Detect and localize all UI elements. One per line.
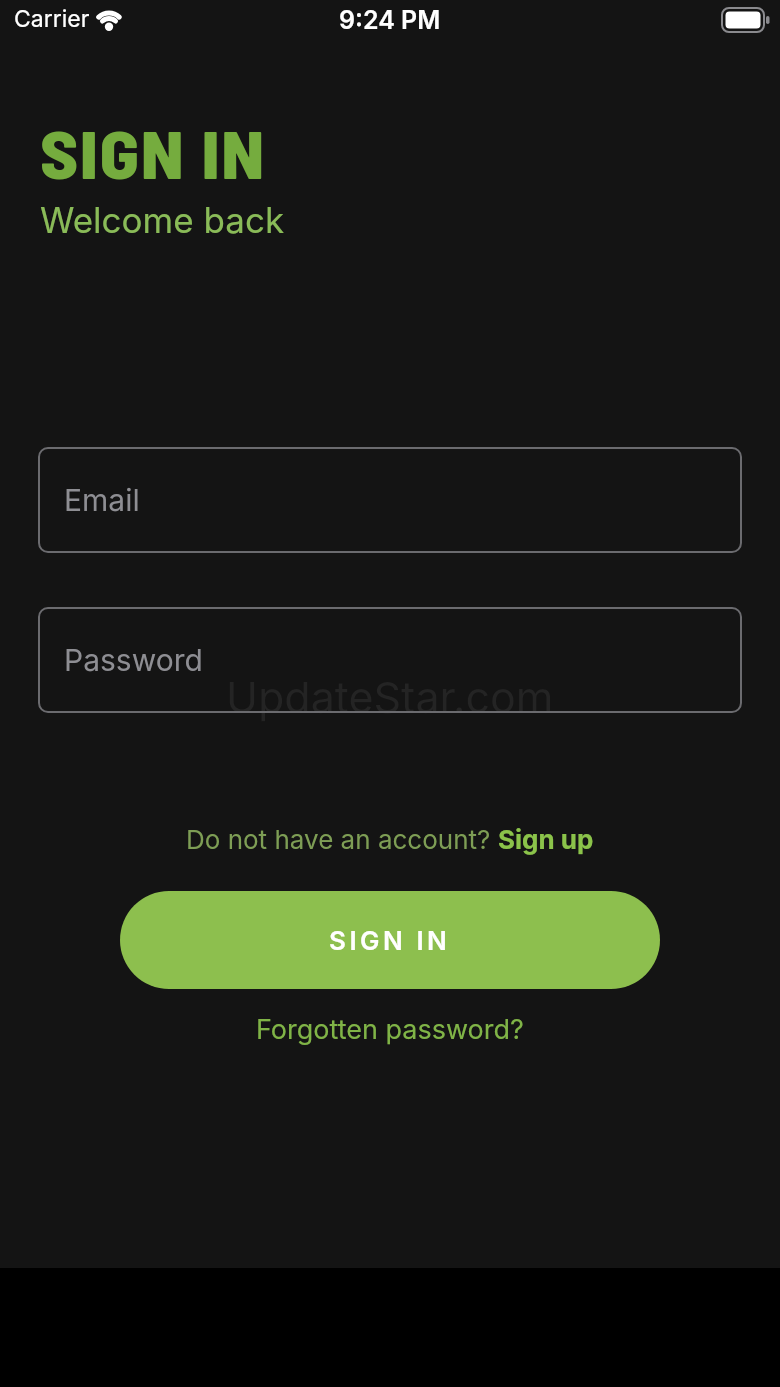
button[interactable]: Forgotten password? — [256, 1013, 524, 1046]
button[interactable]: Sign up — [498, 824, 594, 855]
staticText: Do not have an account? — [186, 824, 498, 855]
staticText: SIGN IN — [40, 113, 267, 192]
button[interactable]: Email — [38, 447, 742, 553]
button[interactable]: SIGN IN — [120, 891, 660, 989]
staticText: Welcome back — [40, 199, 285, 241]
staticText: Email — [64, 482, 140, 518]
button[interactable]: Password — [38, 607, 742, 713]
staticText: Carrier — [14, 5, 90, 33]
staticText: SIGN IN — [329, 925, 451, 956]
staticText: Password — [64, 642, 203, 678]
staticText: 9:24 PM — [339, 5, 441, 35]
staticText: UpdateStar.com — [226, 671, 554, 723]
